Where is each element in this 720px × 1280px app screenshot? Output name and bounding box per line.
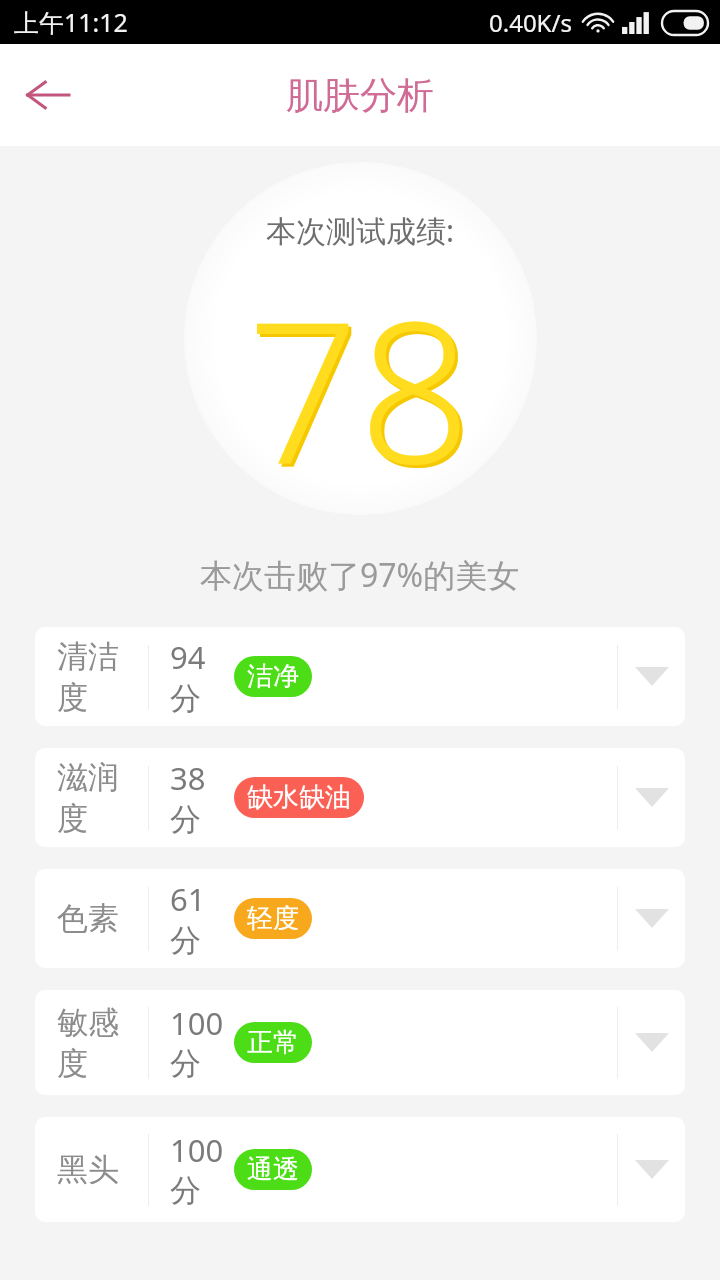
staticText: 94分 bbox=[170, 636, 231, 718]
button[interactable]: Back bbox=[14, 62, 80, 128]
staticText: 通透 bbox=[247, 1153, 299, 1186]
staticText: 洁净 bbox=[247, 660, 299, 693]
staticText: 分 bbox=[170, 1171, 201, 1210]
staticText: 敏感度 bbox=[57, 1003, 148, 1083]
staticText: 78 bbox=[247, 253, 471, 515]
button[interactable]: 色素 bbox=[35, 869, 685, 968]
button[interactable]: 敏感度 bbox=[35, 990, 685, 1095]
staticText: 上午11:12 bbox=[14, 5, 128, 39]
staticText: 滋润度 bbox=[57, 758, 148, 838]
staticText: 100 bbox=[170, 1002, 224, 1044]
button[interactable]: 清洁度 bbox=[35, 627, 685, 726]
button[interactable]: 黑头 bbox=[35, 1117, 685, 1222]
staticText: 78 bbox=[250, 256, 474, 515]
staticText: 本次测试成绩: bbox=[266, 210, 455, 251]
staticText: 黑头 bbox=[57, 1150, 119, 1189]
staticText: 本次击败了97%的美女 bbox=[200, 553, 520, 597]
staticText: 肌肤分析 bbox=[286, 72, 434, 119]
staticText: 色素 bbox=[57, 899, 119, 938]
staticText: 100 bbox=[170, 1129, 224, 1171]
staticText: 正常 bbox=[247, 1026, 299, 1059]
staticText: 清洁度 bbox=[57, 637, 148, 717]
staticText: 轻度 bbox=[247, 902, 299, 935]
staticText: 分 bbox=[170, 1044, 201, 1083]
staticText: 38分 bbox=[170, 757, 231, 839]
staticText: 0.40K/s bbox=[489, 6, 572, 39]
staticText: 61分 bbox=[170, 878, 231, 960]
staticText: 缺水缺油 bbox=[247, 781, 351, 814]
button[interactable]: 滋润度 bbox=[35, 748, 685, 847]
